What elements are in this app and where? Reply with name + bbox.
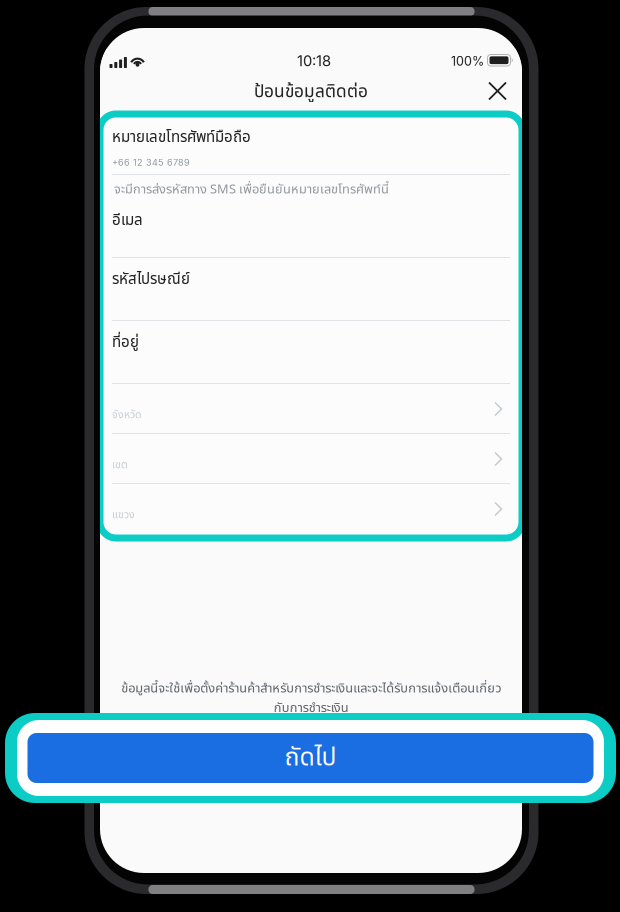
- staticText: 10:18: [297, 52, 331, 70]
- staticText: 100%: [451, 53, 484, 69]
- staticText: +66 12 345 6789: [112, 157, 190, 168]
- staticText: ป้อนข้อมูลติดต่อ: [254, 79, 368, 105]
- staticText: รหัสไปรษณีย์: [112, 268, 190, 291]
- button[interactable]: Close: [476, 70, 518, 112]
- button[interactable]: ถัดไป: [27, 733, 593, 783]
- staticText: จะมีการส่งรหัสทาง SMS เพื่อยืนยันหมายเลข…: [114, 180, 389, 199]
- staticText: ข้อมูลนี้จะใช้เพื่อตั้งค่าร้านค้าสำหรับก…: [121, 679, 501, 718]
- staticText: ที่อยู่: [112, 331, 139, 354]
- staticText: เขต: [112, 457, 128, 473]
- staticText: ถัดไป: [284, 739, 336, 777]
- staticText: จังหวัด: [112, 407, 141, 423]
- button[interactable]: จังหวัด: [100, 383, 522, 433]
- staticText: แขวง: [112, 507, 135, 523]
- staticText: หมายเลขโทรศัพท์มือถือ: [112, 126, 251, 149]
- button[interactable]: เขต: [100, 433, 522, 483]
- staticText: อีเมล: [112, 209, 143, 232]
- button[interactable]: แขวง: [100, 483, 522, 533]
